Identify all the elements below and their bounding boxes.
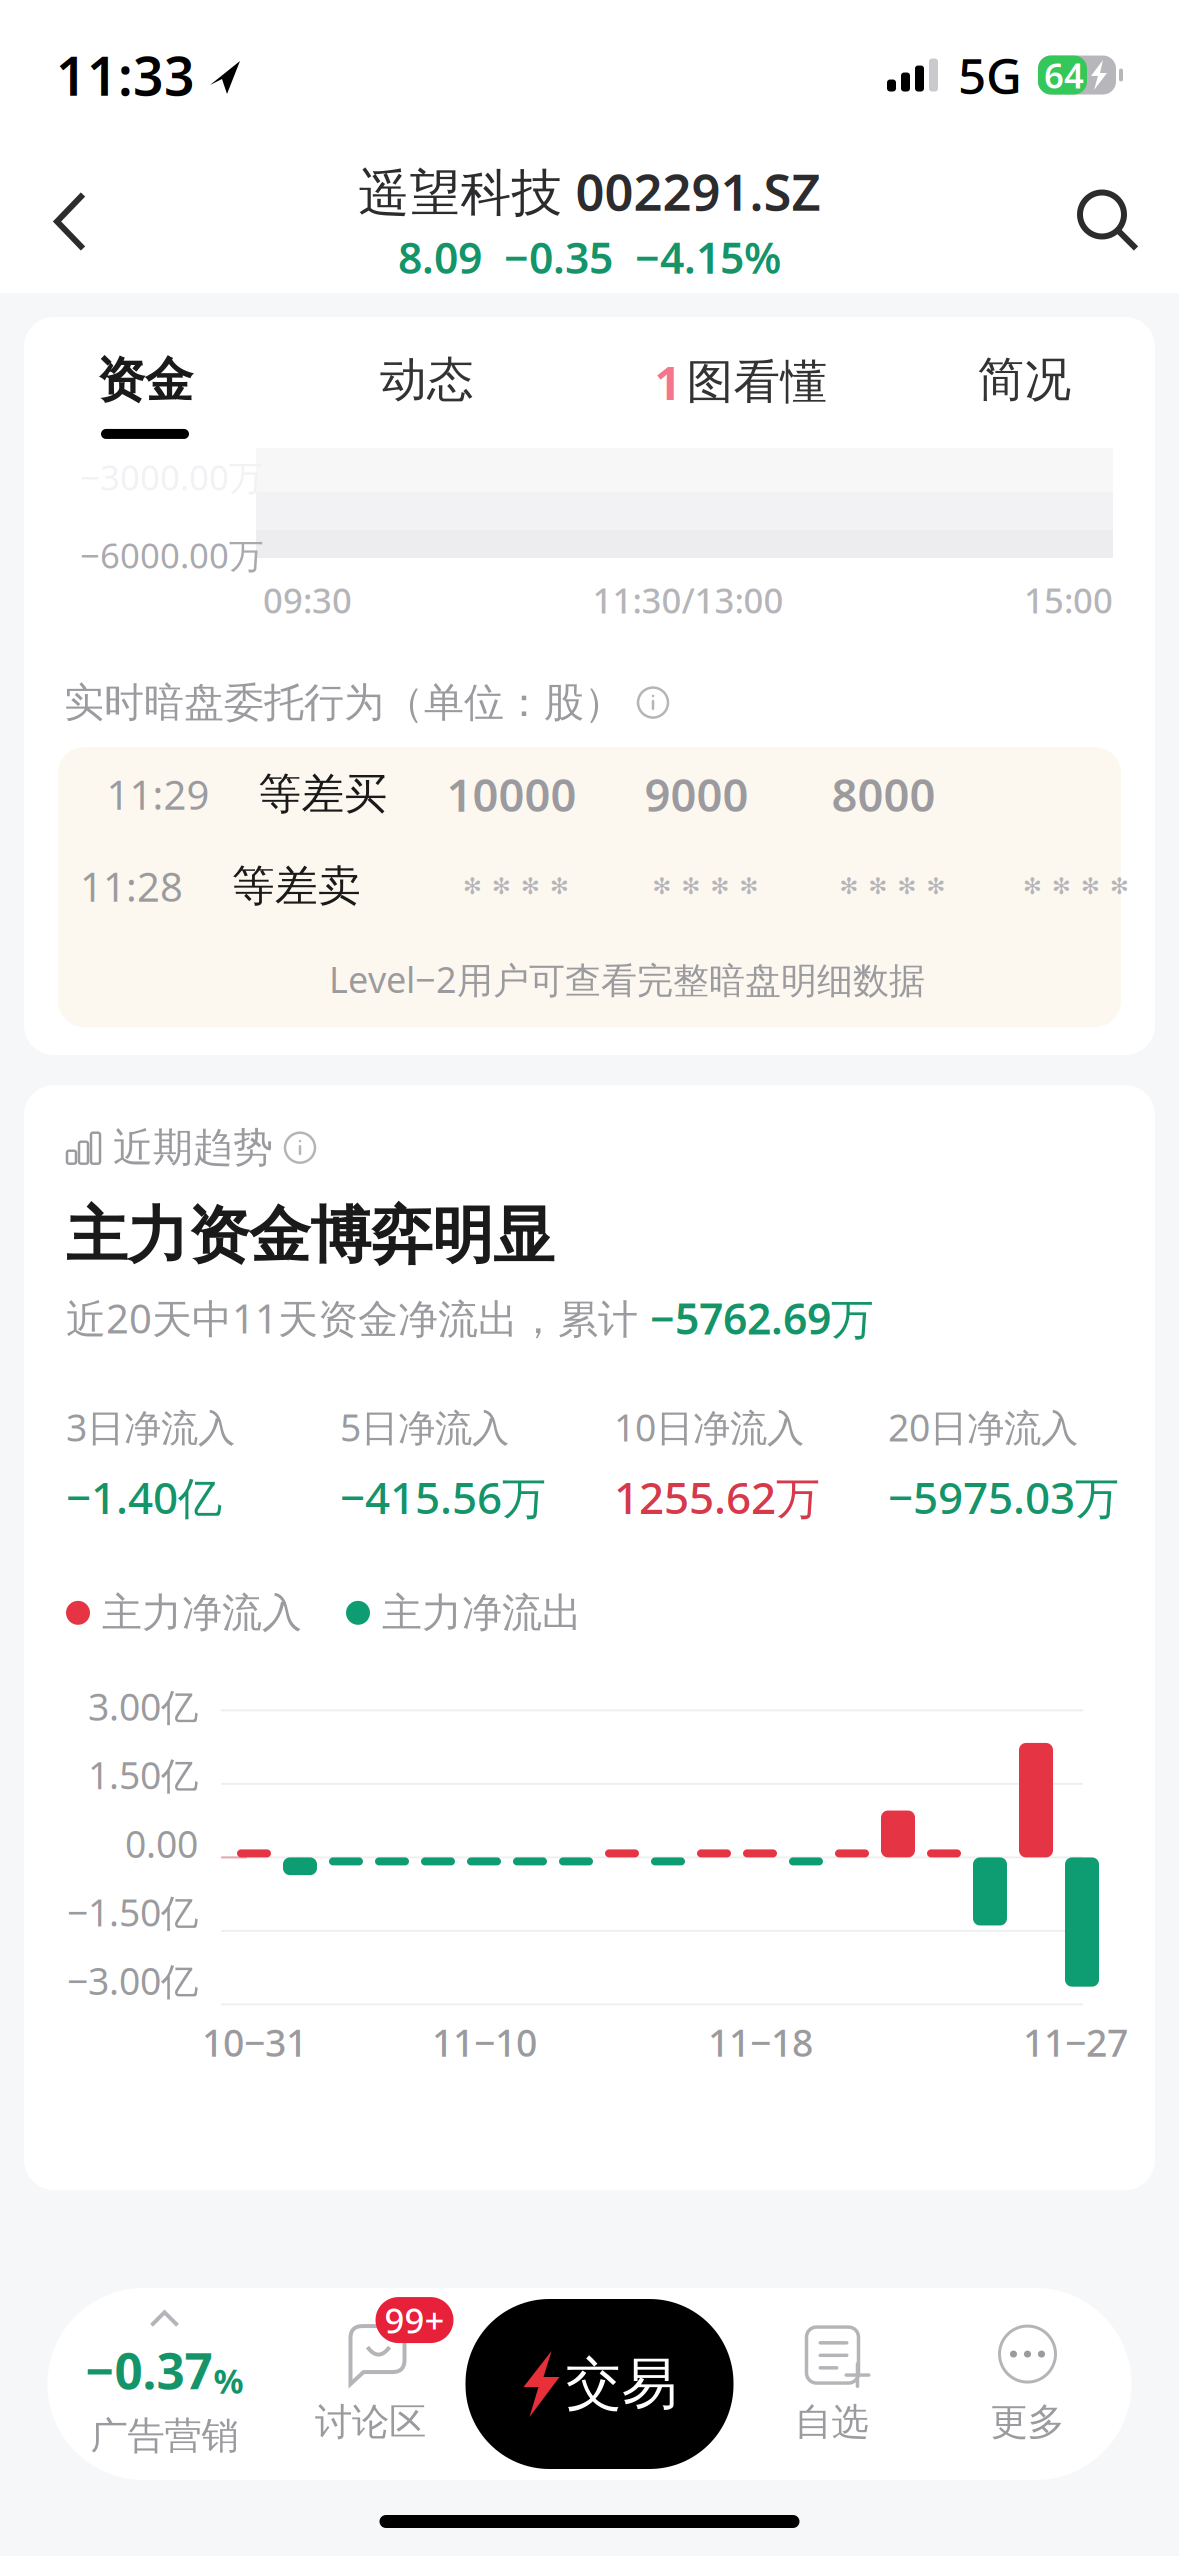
staticText: −5975.03万	[888, 1468, 1119, 1526]
staticText: 11−18	[708, 2017, 813, 2067]
staticText: 10日净流入	[614, 1402, 804, 1452]
staticText: 等差卖	[232, 860, 361, 912]
button[interactable]: 99+	[275, 2289, 465, 2479]
staticText: −3.00亿	[67, 1956, 198, 2005]
staticText: 更多	[990, 2399, 1064, 2445]
staticText: ✻	[521, 873, 540, 899]
staticText: ✻	[897, 873, 916, 899]
staticText: −1.50亿	[67, 1887, 198, 1937]
staticText: 11:29	[106, 768, 209, 821]
staticText: 99+	[384, 2297, 444, 2343]
staticText: 11−27	[1023, 2017, 1128, 2067]
staticText: 自选	[794, 2399, 868, 2445]
staticText: ✻	[710, 873, 729, 899]
staticText: ✻	[652, 873, 671, 899]
staticText: Level−2用户可查看完整暗盘明细数据	[329, 955, 925, 1003]
staticText: 等差买	[258, 768, 387, 820]
staticText: 1.50亿	[88, 1750, 198, 1800]
staticText: ✻	[1110, 873, 1129, 899]
staticText: 1255.62万	[614, 1468, 820, 1526]
staticText: 15:00	[1024, 577, 1113, 623]
staticText: 8.09 −0.35 −4.15%	[398, 229, 781, 285]
staticText: ✻	[492, 873, 511, 899]
staticText: 11:28	[80, 860, 183, 913]
button[interactable]: 交易	[465, 2299, 733, 2469]
staticText: 讨论区	[315, 2399, 426, 2445]
staticText: ✻	[739, 873, 758, 899]
staticText: 0.00	[125, 1819, 198, 1868]
staticText: 主力资金博弈明显	[66, 1198, 554, 1274]
staticText: ✻	[1081, 873, 1100, 899]
staticText: 实时暗盘委托行为（单位：股）	[64, 678, 624, 727]
staticText: 11:33	[56, 40, 195, 110]
staticText: 主力净流入	[102, 1588, 302, 1637]
staticText: 动态	[380, 351, 474, 408]
staticText: ✻	[681, 873, 700, 899]
staticText: 3日净流入	[66, 1402, 235, 1452]
staticText: 64	[1044, 52, 1084, 98]
staticText: 遥望科技 002291.SZ	[358, 157, 820, 225]
staticText: 5G	[958, 42, 1022, 108]
staticText: −3000.00万	[80, 454, 264, 500]
staticText: 资金	[97, 351, 193, 410]
button[interactable]: 动态	[266, 317, 588, 448]
staticText: 图看懂	[686, 353, 827, 411]
staticText: 8000	[831, 764, 935, 824]
button[interactable]: −0.37	[53, 2289, 275, 2479]
staticText: 近20天中11天资金净流出，累计	[66, 1291, 650, 1344]
button[interactable]: Back	[22, 173, 118, 269]
staticText: 10000	[446, 764, 576, 824]
staticText: ✻	[1023, 873, 1042, 899]
staticText: −0.37	[85, 2337, 212, 2403]
button[interactable]: 1	[588, 317, 894, 448]
staticText: 20日净流入	[888, 1402, 1078, 1452]
staticText: 11−10	[432, 2017, 537, 2067]
staticText: 交易	[565, 2350, 677, 2418]
staticText: 9000	[644, 764, 748, 824]
staticText: 近期趋势	[113, 1123, 273, 1172]
staticText: ✻	[550, 873, 569, 899]
staticText: −6000.00万	[80, 532, 264, 578]
staticText: ✻	[868, 873, 887, 899]
staticText: 简况	[977, 351, 1071, 408]
staticText: %	[213, 2359, 243, 2403]
staticText: −1.40亿	[66, 1468, 222, 1526]
staticText: ✻	[1052, 873, 1071, 899]
staticText: −415.56万	[340, 1468, 546, 1526]
staticText: ✻	[839, 873, 858, 899]
staticText: 主力净流出	[382, 1588, 582, 1637]
staticText: 3.00亿	[88, 1681, 198, 1731]
staticText: 11:30/13:00	[592, 577, 783, 623]
staticText: 5日净流入	[340, 1402, 509, 1452]
button[interactable]: 简况	[894, 317, 1155, 448]
staticText: 1	[654, 351, 681, 413]
button[interactable]: 资金	[24, 317, 266, 448]
staticText: 09:30	[263, 577, 352, 623]
staticText: −5762.69万	[650, 1290, 874, 1346]
staticText: 广告营销	[90, 2413, 238, 2459]
staticText: ✻	[463, 873, 482, 899]
button[interactable]: Search	[1061, 173, 1157, 269]
button[interactable]: 更多	[929, 2289, 1125, 2479]
staticText: 10−31	[202, 2017, 307, 2067]
staticText: ✻	[926, 873, 945, 899]
button[interactable]: 自选	[733, 2289, 929, 2479]
